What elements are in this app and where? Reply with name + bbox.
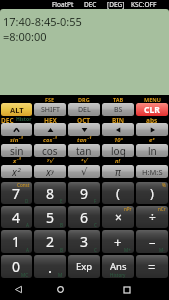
- button[interactable]: (: [102, 182, 134, 204]
- staticText: 3: [80, 232, 89, 251]
- button[interactable]: 3: [68, 230, 100, 253]
- button[interactable]: ln: [136, 144, 168, 157]
- staticText: 4: [12, 208, 21, 227]
- staticText: E: [60, 198, 63, 204]
- staticText: A: [26, 222, 29, 228]
- staticText: Ans: [110, 260, 127, 273]
- button[interactable]: tan: [68, 144, 100, 157]
- staticText: BS: [114, 105, 123, 115]
- staticText: √: [81, 166, 88, 178]
- staticText: [DEG]: [107, 0, 125, 9]
- button[interactable]: .: [34, 255, 66, 278]
- button[interactable]: Up chevron: [1, 123, 32, 136]
- staticText: xʸ: [46, 165, 54, 178]
- button[interactable]: sin: [1, 144, 32, 157]
- button[interactable]: BS: [102, 103, 134, 116]
- staticText: ˣ√: [81, 157, 88, 165]
- button[interactable]: ÷: [136, 206, 168, 228]
- staticText: F: [94, 198, 97, 204]
- button[interactable]: x²: [1, 165, 32, 178]
- staticText: DRG: [78, 96, 90, 103]
- staticText: 17:40-8:45-0:55: [3, 14, 82, 29]
- staticText: A: [26, 247, 29, 253]
- button[interactable]: ×: [102, 206, 134, 228]
- staticText: x²: [12, 165, 21, 178]
- staticText: M+: [124, 247, 131, 253]
- button[interactable]: 6: [68, 206, 100, 228]
- button[interactable]: 9: [68, 182, 100, 204]
- staticText: %: [162, 182, 166, 188]
- button[interactable]: ALT: [1, 103, 32, 116]
- staticText: 5: [46, 208, 55, 227]
- staticText: 8: [46, 184, 55, 203]
- staticText: B: [60, 222, 63, 228]
- staticText: .: [48, 257, 53, 277]
- button[interactable]: Up: [34, 123, 66, 136]
- staticText: +: [114, 233, 122, 251]
- button[interactable]: +: [102, 230, 134, 253]
- staticText: DEL: [78, 105, 91, 115]
- staticText: B: [60, 247, 63, 253]
- staticText: cos: [42, 144, 58, 157]
- button[interactable]: Home: [36, 279, 84, 300]
- staticText: 0: [12, 257, 21, 276]
- button[interactable]: 4: [1, 206, 32, 228]
- staticText: –: [149, 233, 156, 251]
- button[interactable]: DEL: [68, 103, 100, 116]
- staticText: nCr: [158, 206, 166, 212]
- staticText: ln: [148, 144, 157, 157]
- staticText: ÷: [149, 209, 156, 225]
- staticText: abs: [146, 116, 158, 123]
- staticText: M: [58, 272, 63, 278]
- button[interactable]: CLR: [136, 103, 168, 116]
- staticText: x⁻¹: [13, 157, 21, 165]
- button[interactable]: Recents: [84, 279, 169, 300]
- staticText: cos⁻¹: [43, 136, 57, 144]
- button[interactable]: 8: [34, 182, 66, 204]
- button[interactable]: Down: [68, 123, 100, 136]
- staticText: ALT: [10, 105, 24, 115]
- staticText: Exp: [76, 260, 93, 273]
- staticText: ×: [115, 209, 122, 225]
- staticText: TAB: [113, 96, 124, 103]
- staticText: eˣ: [149, 136, 155, 144]
- staticText: 6: [80, 208, 89, 227]
- staticText: FSE: [45, 96, 55, 103]
- button[interactable]: ): [136, 182, 168, 204]
- button[interactable]: log: [102, 144, 134, 157]
- staticText: D: [25, 198, 29, 204]
- button[interactable]: √: [68, 165, 100, 178]
- staticText: C: [94, 222, 97, 228]
- staticText: HEX: [44, 116, 57, 123]
- button[interactable]: Right: [136, 123, 168, 136]
- staticText: OCT: [77, 116, 91, 123]
- button[interactable]: 5: [34, 206, 66, 228]
- button[interactable]: xʸ: [34, 165, 66, 178]
- staticText: tan: [76, 144, 92, 157]
- staticText: DEC: [1, 116, 14, 123]
- staticText: History: [16, 116, 33, 123]
- staticText: sin⁻¹: [10, 136, 23, 144]
- button[interactable]: cos: [34, 144, 66, 157]
- button[interactable]: Exp: [68, 255, 100, 278]
- staticText: CLR: [144, 104, 160, 116]
- staticText: log: [111, 144, 126, 157]
- button[interactable]: –: [136, 230, 168, 253]
- button[interactable]: SHIFT: [34, 103, 66, 116]
- staticText: 10ˣ: [114, 136, 123, 144]
- button[interactable]: 0: [1, 255, 32, 278]
- button[interactable]: H:M:S: [136, 165, 168, 178]
- button[interactable]: Left: [102, 123, 134, 136]
- staticText: C: [94, 247, 97, 253]
- button[interactable]: Ans: [102, 255, 134, 278]
- button[interactable]: =: [136, 255, 168, 278]
- button[interactable]: 2: [34, 230, 66, 253]
- staticText: 9: [80, 184, 89, 203]
- staticText: SHIFT: [41, 105, 60, 115]
- staticText: (: [116, 184, 120, 202]
- button[interactable]: π: [102, 165, 134, 178]
- button[interactable]: 7: [1, 182, 32, 204]
- staticText: ): [150, 184, 154, 202]
- button[interactable]: Back: [0, 279, 36, 300]
- button[interactable]: 1: [1, 230, 32, 253]
